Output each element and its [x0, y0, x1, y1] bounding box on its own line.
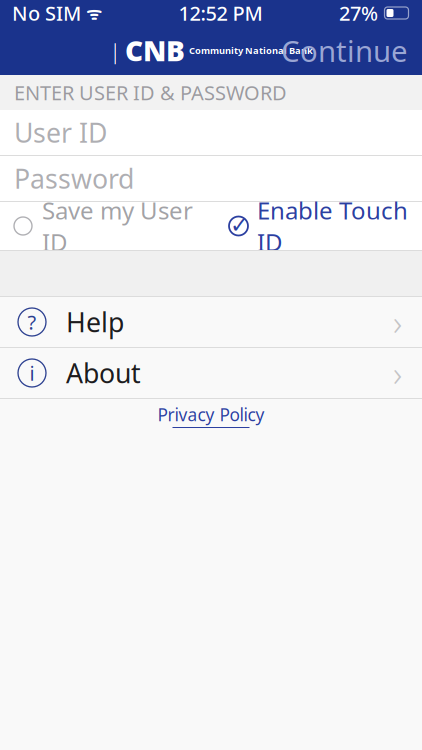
staticText: 27%: [339, 0, 378, 26]
button[interactable]: ✓: [228, 184, 408, 268]
staticText: Help: [66, 304, 124, 340]
button[interactable]: Save my User ID: [14, 184, 193, 268]
staticText: Password: [14, 161, 134, 196]
staticText: 12:52 PM: [178, 0, 262, 26]
button[interactable]: Privacy Policy: [157, 397, 264, 434]
staticText: i: [29, 360, 34, 386]
staticText: About: [66, 355, 141, 391]
staticText: User ID: [14, 115, 107, 150]
staticText: ᯤ: [81, 1, 102, 24]
staticText: Enable Touch ID: [257, 194, 408, 258]
staticText: Privacy Policy: [157, 403, 264, 426]
staticText: ?: [27, 309, 36, 335]
staticText: Save my User ID: [42, 194, 193, 258]
staticText: CNB: [125, 32, 185, 69]
button[interactable]: i: [0, 348, 422, 398]
staticText: Continue: [281, 31, 408, 70]
staticText: No SIM: [12, 0, 81, 26]
staticText: ENTER USER ID & PASSWORD: [14, 79, 287, 106]
staticText: |: [109, 35, 121, 65]
button[interactable]: Continue: [267, 23, 422, 78]
staticText: ›: [393, 350, 402, 396]
staticText: ›: [393, 299, 402, 345]
staticText: Community National Bank: [189, 44, 313, 57]
button[interactable]: ?: [0, 297, 422, 347]
staticText: ✓: [230, 212, 249, 238]
